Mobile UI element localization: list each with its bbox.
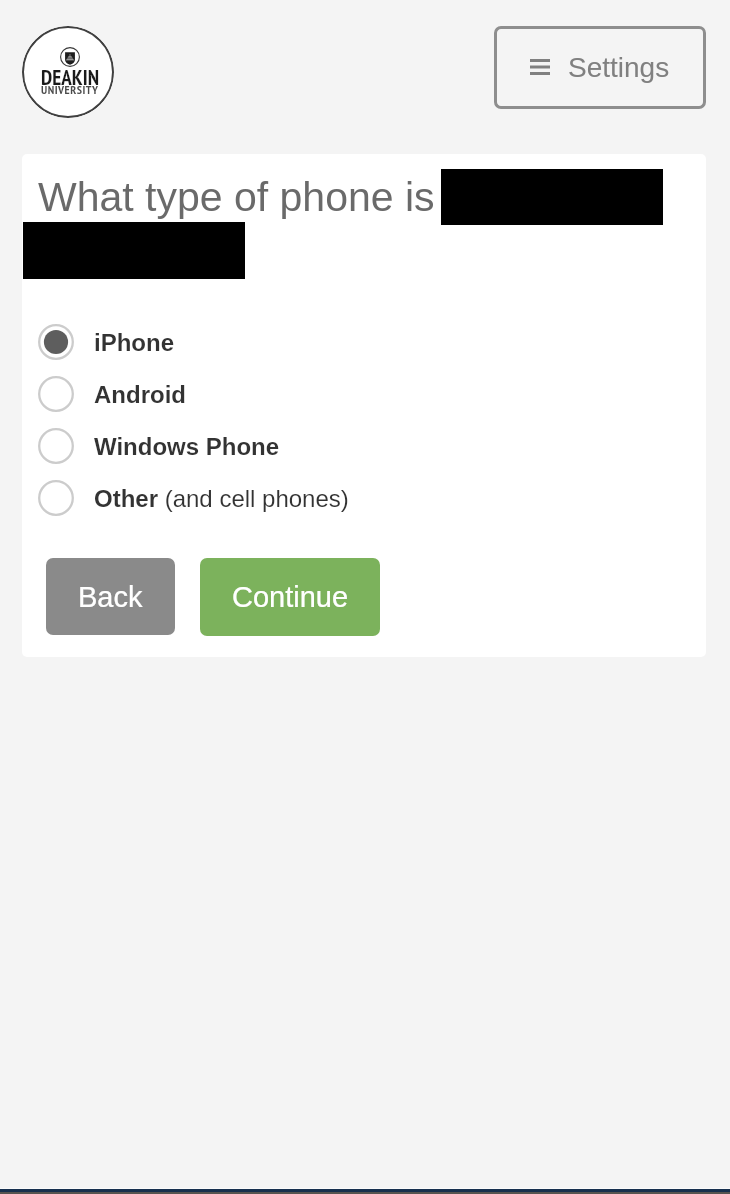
staticText: Back: [78, 581, 143, 613]
staticText: Settings: [568, 52, 670, 83]
staticText: UNIVERSITY: [41, 82, 99, 98]
staticText: What type of phone is: [38, 174, 435, 220]
button[interactable]: Back: [46, 558, 175, 635]
staticText: Continue: [232, 581, 349, 613]
staticText: iPhone: [94, 329, 175, 356]
button[interactable]: Other (and cell phones): [38, 476, 690, 520]
button[interactable]: Deakin University home: [22, 26, 114, 118]
staticText: Android: [94, 381, 186, 408]
button[interactable]: iPhone: [38, 320, 690, 364]
staticText: DEAKIN: [41, 64, 100, 91]
button[interactable]: Continue: [200, 558, 380, 636]
button[interactable]: Settings: [494, 26, 706, 109]
staticText: Windows Phone: [94, 433, 280, 460]
button[interactable]: Android: [38, 372, 690, 416]
button[interactable]: Windows Phone: [38, 424, 690, 468]
staticText: Other (and cell phones): [94, 485, 349, 512]
